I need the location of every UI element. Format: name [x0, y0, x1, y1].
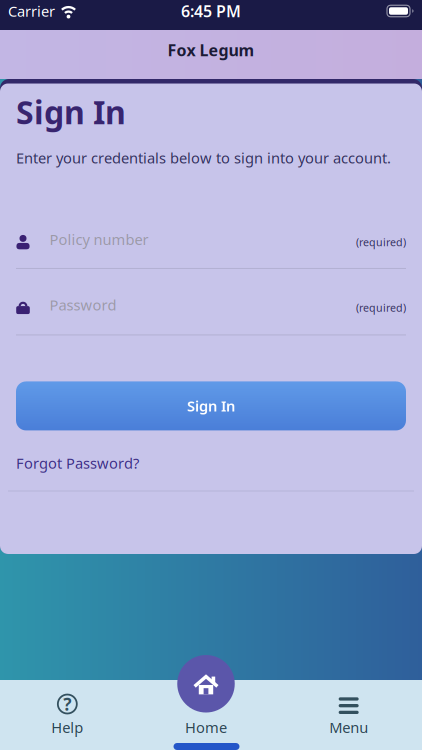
staticText: Sign In: [187, 396, 235, 416]
staticText: Menu: [329, 717, 368, 737]
button[interactable]: Password: [16, 298, 406, 317]
staticText: (required): [356, 301, 406, 315]
staticText: Enter your credentials below to sign int…: [16, 148, 391, 167]
button[interactable]: Sign In: [16, 381, 406, 430]
staticText: 6:45 PM: [181, 0, 241, 22]
button[interactable]: Forgot Password?: [16, 453, 139, 473]
staticText: ?: [63, 692, 71, 715]
staticText: Home: [185, 717, 227, 737]
staticText: Forgot Password?: [16, 453, 139, 473]
staticText: Policy number: [49, 229, 148, 249]
staticText: Carrier: [8, 1, 55, 21]
button[interactable]: ?: [0, 694, 138, 750]
staticText: Sign In: [16, 90, 126, 133]
staticText: (required): [356, 235, 406, 249]
button[interactable]: Policy number: [16, 232, 406, 252]
staticText: Help: [51, 717, 83, 737]
staticText: Password: [49, 295, 116, 314]
staticText: Fox Legum: [167, 39, 254, 61]
button[interactable]: Home: [138, 655, 278, 750]
button[interactable]: Menu: [278, 697, 419, 750]
